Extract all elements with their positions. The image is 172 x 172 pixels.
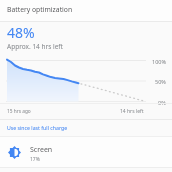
staticText: 0% (158, 99, 166, 106)
other: Screen brightness (8, 146, 21, 159)
staticText: 48% (7, 23, 35, 42)
staticText: 17% (30, 156, 40, 163)
button[interactable]: Use since last full charge (0, 120, 172, 136)
staticText: Screen (30, 145, 53, 155)
button[interactable]: Screen brightness (0, 137, 172, 168)
staticText: Use since last full charge (7, 124, 68, 131)
staticText: 50% (155, 78, 166, 85)
button[interactable]: Battery optimization (0, 0, 172, 21)
staticText: 15 hrs ago (7, 108, 31, 115)
staticText: Battery optimization (7, 5, 73, 14)
staticText: 14 hrs left (120, 108, 144, 115)
staticText: Approx. 14 hrs left (7, 42, 63, 51)
staticText: 100% (152, 58, 167, 65)
